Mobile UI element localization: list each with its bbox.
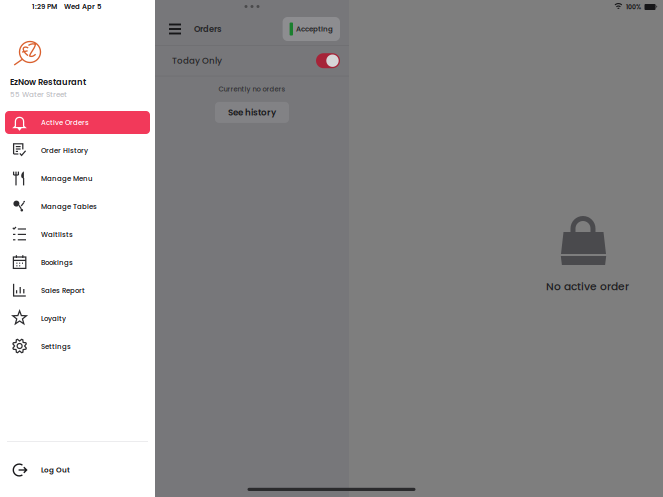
staticText: 100%: [626, 3, 641, 11]
staticText: EzNow Restaurant: [10, 76, 86, 88]
button[interactable]: Active Orders: [5, 111, 150, 134]
staticText: Today Only: [172, 55, 222, 67]
staticText: Orders: [194, 23, 222, 35]
button[interactable]: Bookings: [5, 251, 150, 274]
button[interactable]: Manage Menu: [5, 167, 150, 190]
button[interactable]: Waitlists: [5, 223, 150, 246]
staticText: Currently no orders: [218, 84, 285, 94]
staticText: Wed Apr 5: [64, 2, 101, 11]
staticText: Manage Tables: [41, 202, 97, 211]
staticText: Log Out: [41, 465, 70, 475]
staticText: 55 Water Street: [10, 89, 67, 100]
staticText: Active Orders: [41, 118, 89, 127]
staticText: Accepting: [296, 24, 333, 34]
button[interactable]: Settings: [5, 335, 150, 358]
button[interactable]: See history: [215, 102, 289, 123]
staticText: Waitlists: [41, 230, 73, 239]
button[interactable]: Order History: [5, 139, 150, 162]
button[interactable]: Log Out: [0, 459, 155, 481]
staticText: Sales Report: [41, 286, 85, 295]
staticText: Order History: [41, 146, 88, 155]
staticText: Manage Menu: [41, 174, 93, 183]
button[interactable]: Accepting: [283, 17, 340, 41]
button[interactable]: Loyalty: [5, 307, 150, 330]
staticText: Settings: [41, 342, 71, 351]
staticText: 1:29 PM: [32, 2, 57, 11]
button[interactable]: Manage Tables: [5, 195, 150, 218]
button[interactable]: Menu: [164, 18, 186, 39]
staticText: See history: [228, 106, 276, 118]
staticText: No active order: [546, 279, 629, 294]
button[interactable]: Sales Report: [5, 279, 150, 302]
staticText: Bookings: [41, 258, 73, 267]
staticText: Loyalty: [41, 314, 66, 323]
